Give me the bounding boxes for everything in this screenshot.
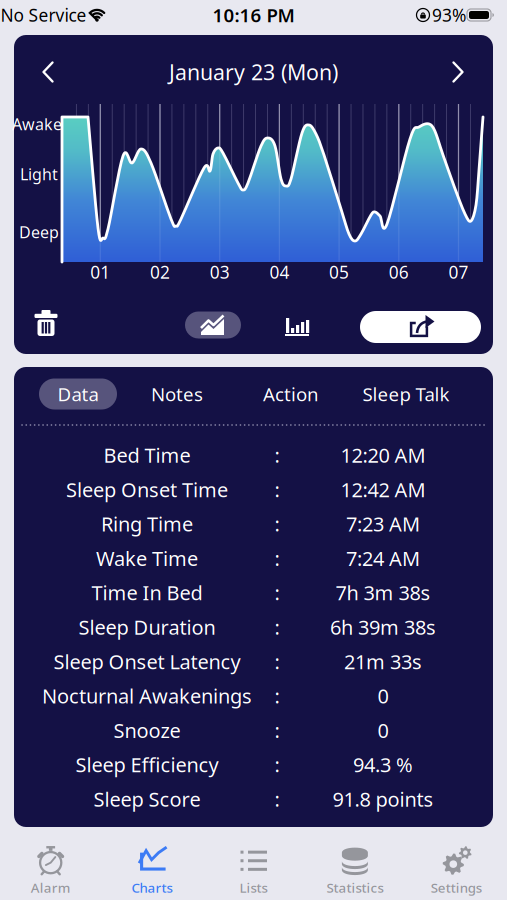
staticText: 6h 39m 38s	[330, 614, 436, 640]
staticText: :	[274, 476, 279, 503]
staticText: :	[274, 682, 279, 709]
staticText: Time In Bed	[91, 579, 202, 606]
staticText: 12:20 AM	[340, 442, 425, 468]
staticText: :	[274, 510, 279, 537]
staticText: 03	[210, 260, 230, 283]
button[interactable]: Data	[39, 378, 117, 409]
staticText: Sleep Onset Time	[66, 476, 228, 503]
staticText: 7h 3m 38s	[335, 579, 430, 606]
staticText: 12:42 AM	[340, 476, 425, 503]
staticText: :	[274, 442, 279, 468]
staticText: :	[274, 614, 279, 640]
staticText: 91.8 points	[332, 786, 433, 812]
staticText: Data	[57, 382, 98, 406]
staticText: 0	[377, 682, 388, 709]
staticText: 93%	[432, 3, 466, 26]
staticText: 10:16 PM	[212, 3, 294, 27]
button[interactable]: Bar chart	[281, 310, 313, 340]
staticText: 07	[448, 260, 468, 283]
button[interactable]: Notes	[143, 374, 211, 414]
staticText: :	[274, 751, 279, 778]
staticText: Sleep Onset Latency	[53, 648, 240, 675]
staticText: Light	[20, 163, 58, 185]
staticText: January 23 (Mon)	[169, 58, 338, 86]
button[interactable]: Settings	[431, 845, 482, 896]
staticText: 7:23 AM	[346, 510, 420, 537]
staticText: 7:24 AM	[346, 545, 420, 571]
staticText: 02	[150, 260, 170, 283]
staticText: :	[274, 579, 279, 606]
staticText: Ring Time	[101, 510, 193, 537]
staticText: Sleep Duration	[78, 614, 215, 640]
staticText: Sleep Efficiency	[75, 751, 218, 778]
button[interactable]: Share	[360, 311, 481, 343]
staticText: 21m 33s	[344, 648, 422, 675]
staticText: :	[274, 648, 279, 675]
staticText: Nocturnal Awakenings	[42, 682, 252, 709]
staticText: 04	[269, 260, 289, 283]
staticText: Sleep Talk	[362, 382, 449, 406]
staticText: 01	[90, 260, 110, 283]
staticText: 06	[389, 260, 409, 283]
staticText: Awake	[12, 113, 62, 135]
button[interactable]: Lists	[236, 845, 270, 896]
button[interactable]: Delete	[28, 304, 63, 342]
staticText: Statistics	[326, 879, 383, 896]
staticText: :	[274, 545, 279, 571]
staticText: Deep	[19, 221, 59, 243]
button[interactable]: Alarm	[31, 845, 71, 896]
staticText: Notes	[151, 382, 203, 406]
button[interactable]: Statistics	[326, 845, 383, 896]
staticText: Sleep Score	[93, 786, 200, 812]
button[interactable]: Line chart	[185, 311, 241, 338]
staticText: Alarm	[31, 879, 71, 896]
staticText: 94.3 %	[353, 751, 413, 778]
staticText: 0	[377, 717, 388, 743]
button[interactable]: Action	[255, 374, 327, 414]
button[interactable]: Charts	[132, 845, 173, 896]
staticText: Lists	[239, 879, 267, 896]
staticText: No Service	[0, 3, 86, 26]
staticText: Charts	[132, 879, 173, 896]
staticText: :	[274, 786, 279, 812]
staticText: :	[274, 717, 279, 743]
button[interactable]: Sleep Talk	[354, 374, 457, 414]
staticText: Snooze	[113, 717, 180, 743]
staticText: Wake Time	[96, 545, 198, 571]
staticText: 05	[329, 260, 349, 283]
staticText: Settings	[431, 879, 482, 896]
button[interactable]: Previous day	[33, 52, 62, 91]
staticText: Bed Time	[103, 442, 190, 468]
staticText: Action	[263, 382, 319, 406]
button[interactable]: Next day	[443, 52, 472, 91]
